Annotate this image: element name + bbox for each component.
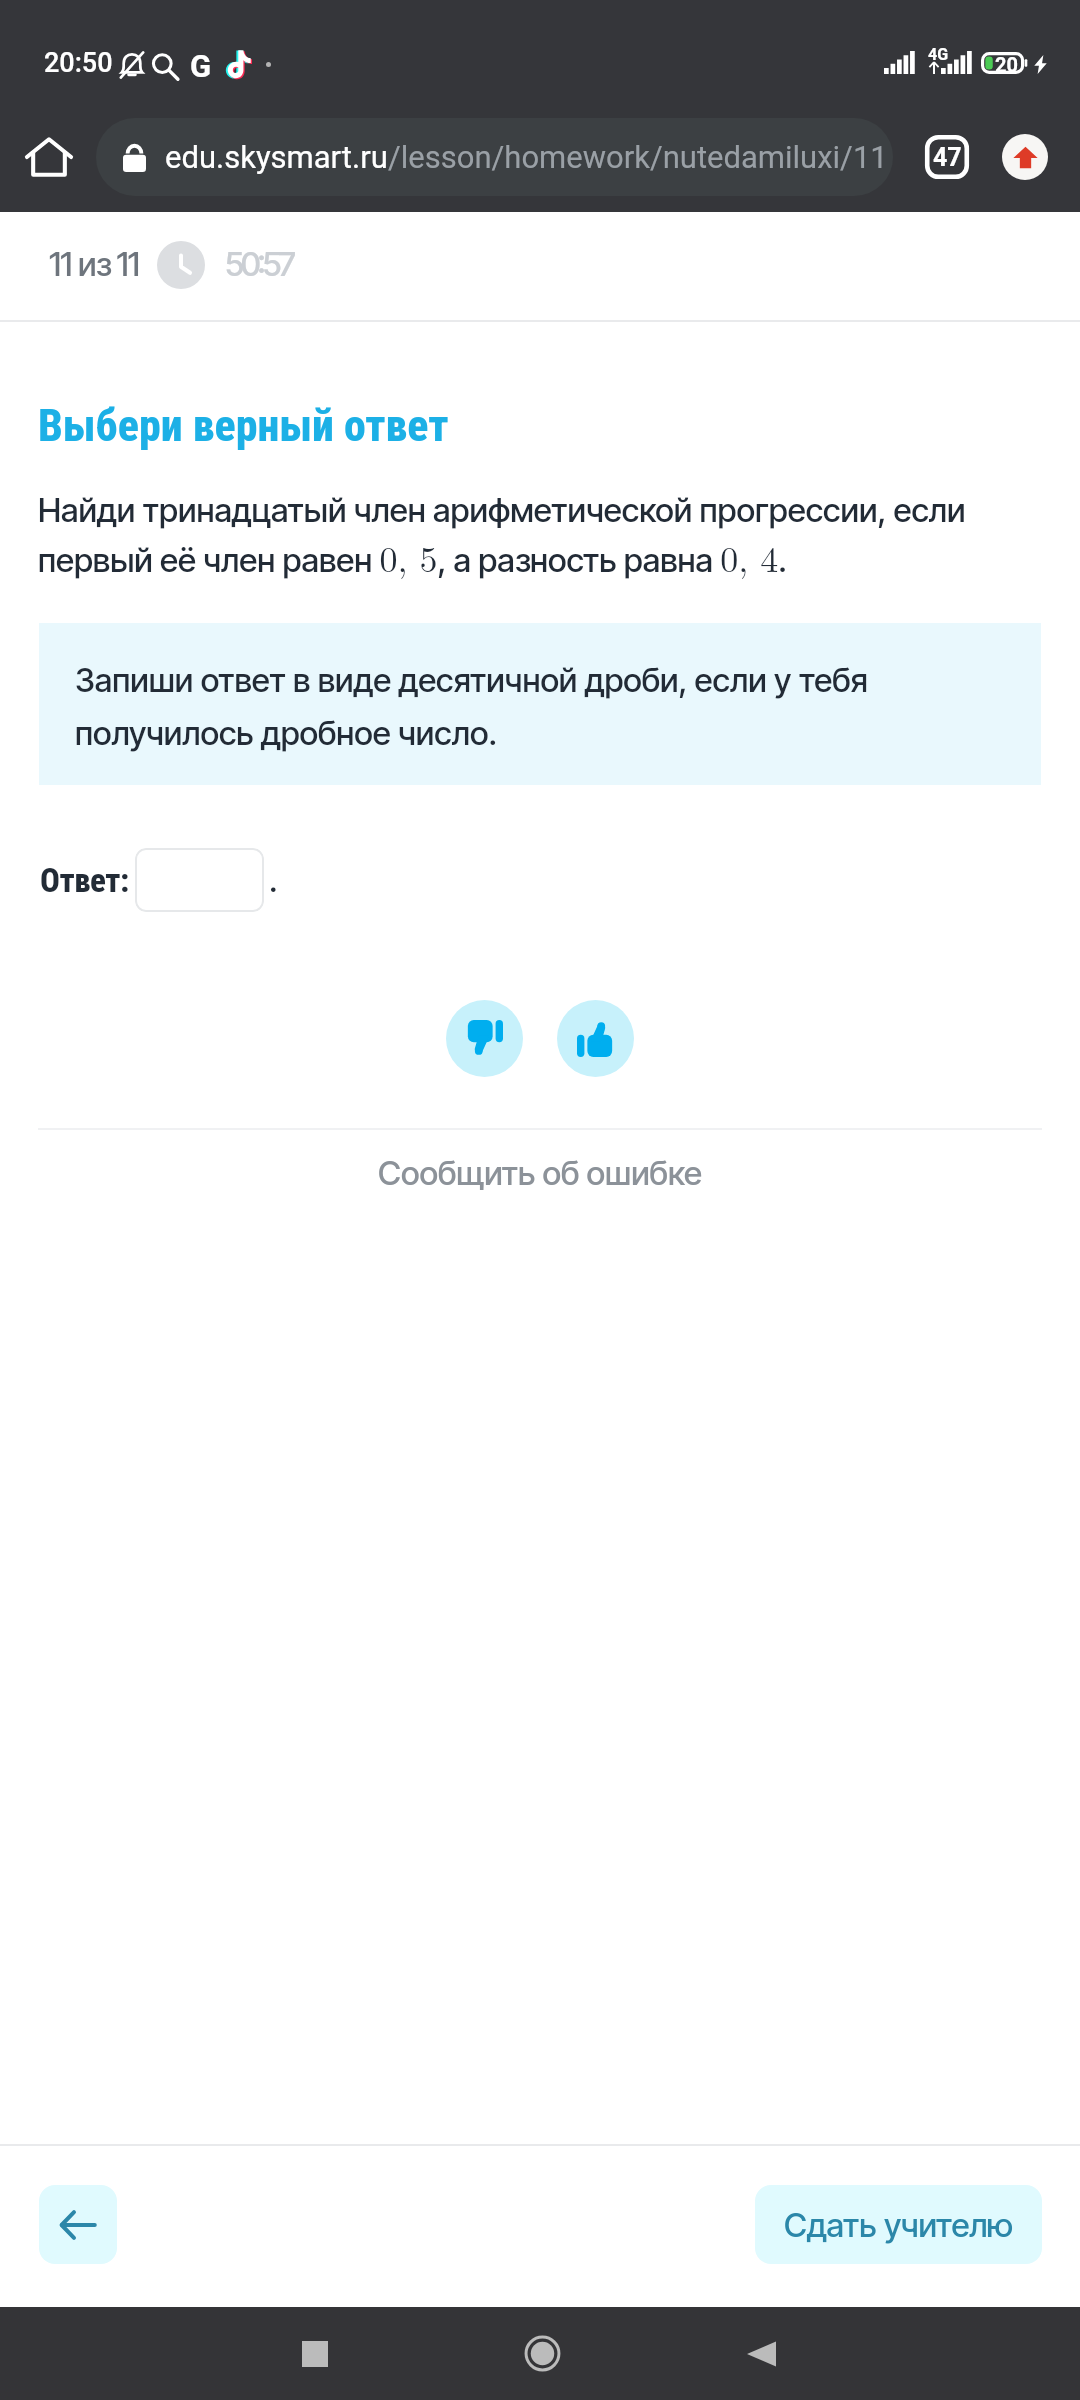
staticText: edu.skysmart.ru	[165, 139, 388, 175]
button[interactable]: Recent apps	[260, 2307, 370, 2400]
button[interactable]: Back	[39, 2185, 117, 2264]
staticText: 47	[933, 143, 962, 172]
staticText: Сдать учителю	[784, 2205, 1014, 2245]
button[interactable]: Сдать учителю	[755, 2185, 1042, 2264]
staticText: Сообщить об ошибке	[378, 1153, 702, 1193]
button[interactable]: edu.skysmart.ru	[96, 118, 893, 196]
button[interactable]: Back	[706, 2307, 816, 2400]
staticText: Выбери верный ответ	[38, 400, 449, 452]
staticText: /lesson/homework/nutedamiluxi/11	[388, 139, 888, 175]
button[interactable]: Tabs	[916, 126, 978, 188]
staticText: 20	[995, 53, 1018, 75]
staticText: Найди тринадцатый член арифметической пр…	[38, 482, 1080, 582]
staticText: 20:50	[44, 50, 113, 78]
staticText: 11 из 11	[49, 249, 140, 283]
staticText: 50:57	[225, 249, 293, 283]
staticText: Запиши ответ в виде десятичной дроби, ес…	[75, 650, 1007, 756]
button[interactable]: Home	[487, 2307, 597, 2400]
staticText: G	[190, 48, 212, 82]
staticText: .	[269, 860, 278, 900]
button[interactable]: Dislike	[446, 1000, 523, 1077]
staticText: 4G	[928, 45, 949, 64]
button[interactable]: Like	[557, 1000, 634, 1077]
button[interactable]: Downloads	[994, 126, 1056, 188]
button[interactable]: Сообщить об ошибке	[0, 1141, 1080, 1205]
button[interactable]: Home	[18, 126, 80, 188]
staticText: Ответ:	[40, 861, 129, 900]
button[interactable]	[135, 848, 264, 912]
